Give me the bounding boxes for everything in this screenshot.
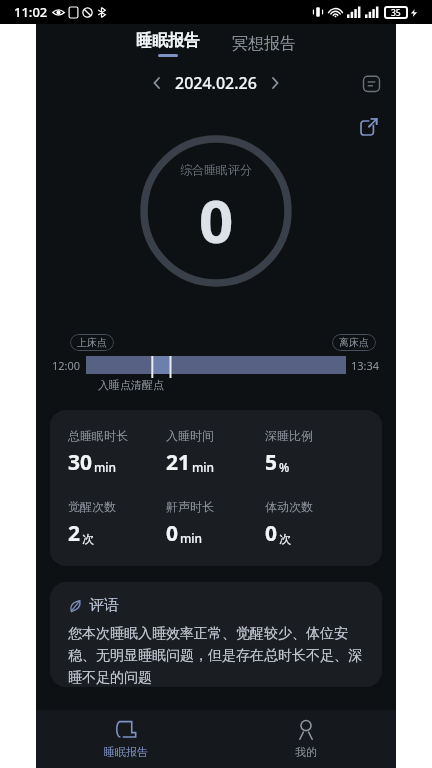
staticText: 30 bbox=[68, 448, 93, 477]
staticText: 入睡点 bbox=[98, 378, 131, 392]
staticText: 睡眠报告 bbox=[104, 745, 148, 759]
button[interactable]: Share bbox=[354, 112, 384, 142]
staticText: 11:02 bbox=[14, 3, 48, 21]
staticText: 12:00 bbox=[52, 358, 81, 373]
button[interactable]: 我的 bbox=[216, 710, 396, 768]
staticText: 深睡比例 bbox=[265, 428, 313, 443]
button[interactable]: Calendar bbox=[356, 68, 386, 98]
staticText: 觉醒次数 bbox=[68, 499, 116, 514]
staticText: 评语 bbox=[89, 596, 119, 615]
staticText: 2 bbox=[68, 519, 81, 548]
staticText: 2024.02.26 bbox=[175, 72, 257, 94]
button[interactable]: 睡眠报告 bbox=[36, 710, 216, 768]
staticText: % bbox=[279, 459, 290, 475]
staticText: 您本次睡眠入睡效率正常、觉醒较少、体位安稳、无明显睡眠问题，但是存在总时长不足、… bbox=[68, 625, 364, 687]
staticText: 睡眠报告 bbox=[136, 31, 200, 51]
staticText: 总睡眠时长 bbox=[68, 428, 128, 443]
staticText: 35 bbox=[391, 7, 401, 19]
staticText: 我的 bbox=[295, 745, 317, 759]
staticText: 0 bbox=[166, 519, 179, 548]
staticText: min bbox=[180, 530, 203, 546]
staticText: 离床点 bbox=[339, 336, 369, 349]
staticText: 鼾声时长 bbox=[166, 499, 214, 514]
staticText: 体动次数 bbox=[265, 499, 313, 514]
staticText: min bbox=[192, 459, 215, 475]
staticText: 上床点 bbox=[77, 336, 107, 349]
staticText: 次 bbox=[279, 531, 291, 546]
staticText: 综合睡眠评分 bbox=[180, 162, 252, 177]
button[interactable]: Previous day bbox=[145, 71, 169, 95]
staticText: 13:34 bbox=[351, 358, 380, 373]
button[interactable]: 睡眠报告 bbox=[128, 29, 208, 59]
button[interactable]: 冥想报告 bbox=[224, 32, 304, 56]
staticText: 清醒点 bbox=[131, 378, 164, 392]
staticText: min bbox=[94, 459, 117, 475]
staticText: 5 bbox=[265, 448, 278, 477]
staticText: 0 bbox=[199, 179, 234, 261]
staticText: 21 bbox=[166, 448, 191, 477]
button[interactable]: Next day bbox=[263, 71, 287, 95]
staticText: 0 bbox=[265, 519, 278, 548]
staticText: 冥想报告 bbox=[232, 34, 296, 54]
staticText: 入睡时间 bbox=[166, 428, 214, 443]
staticText: 次 bbox=[82, 531, 94, 546]
